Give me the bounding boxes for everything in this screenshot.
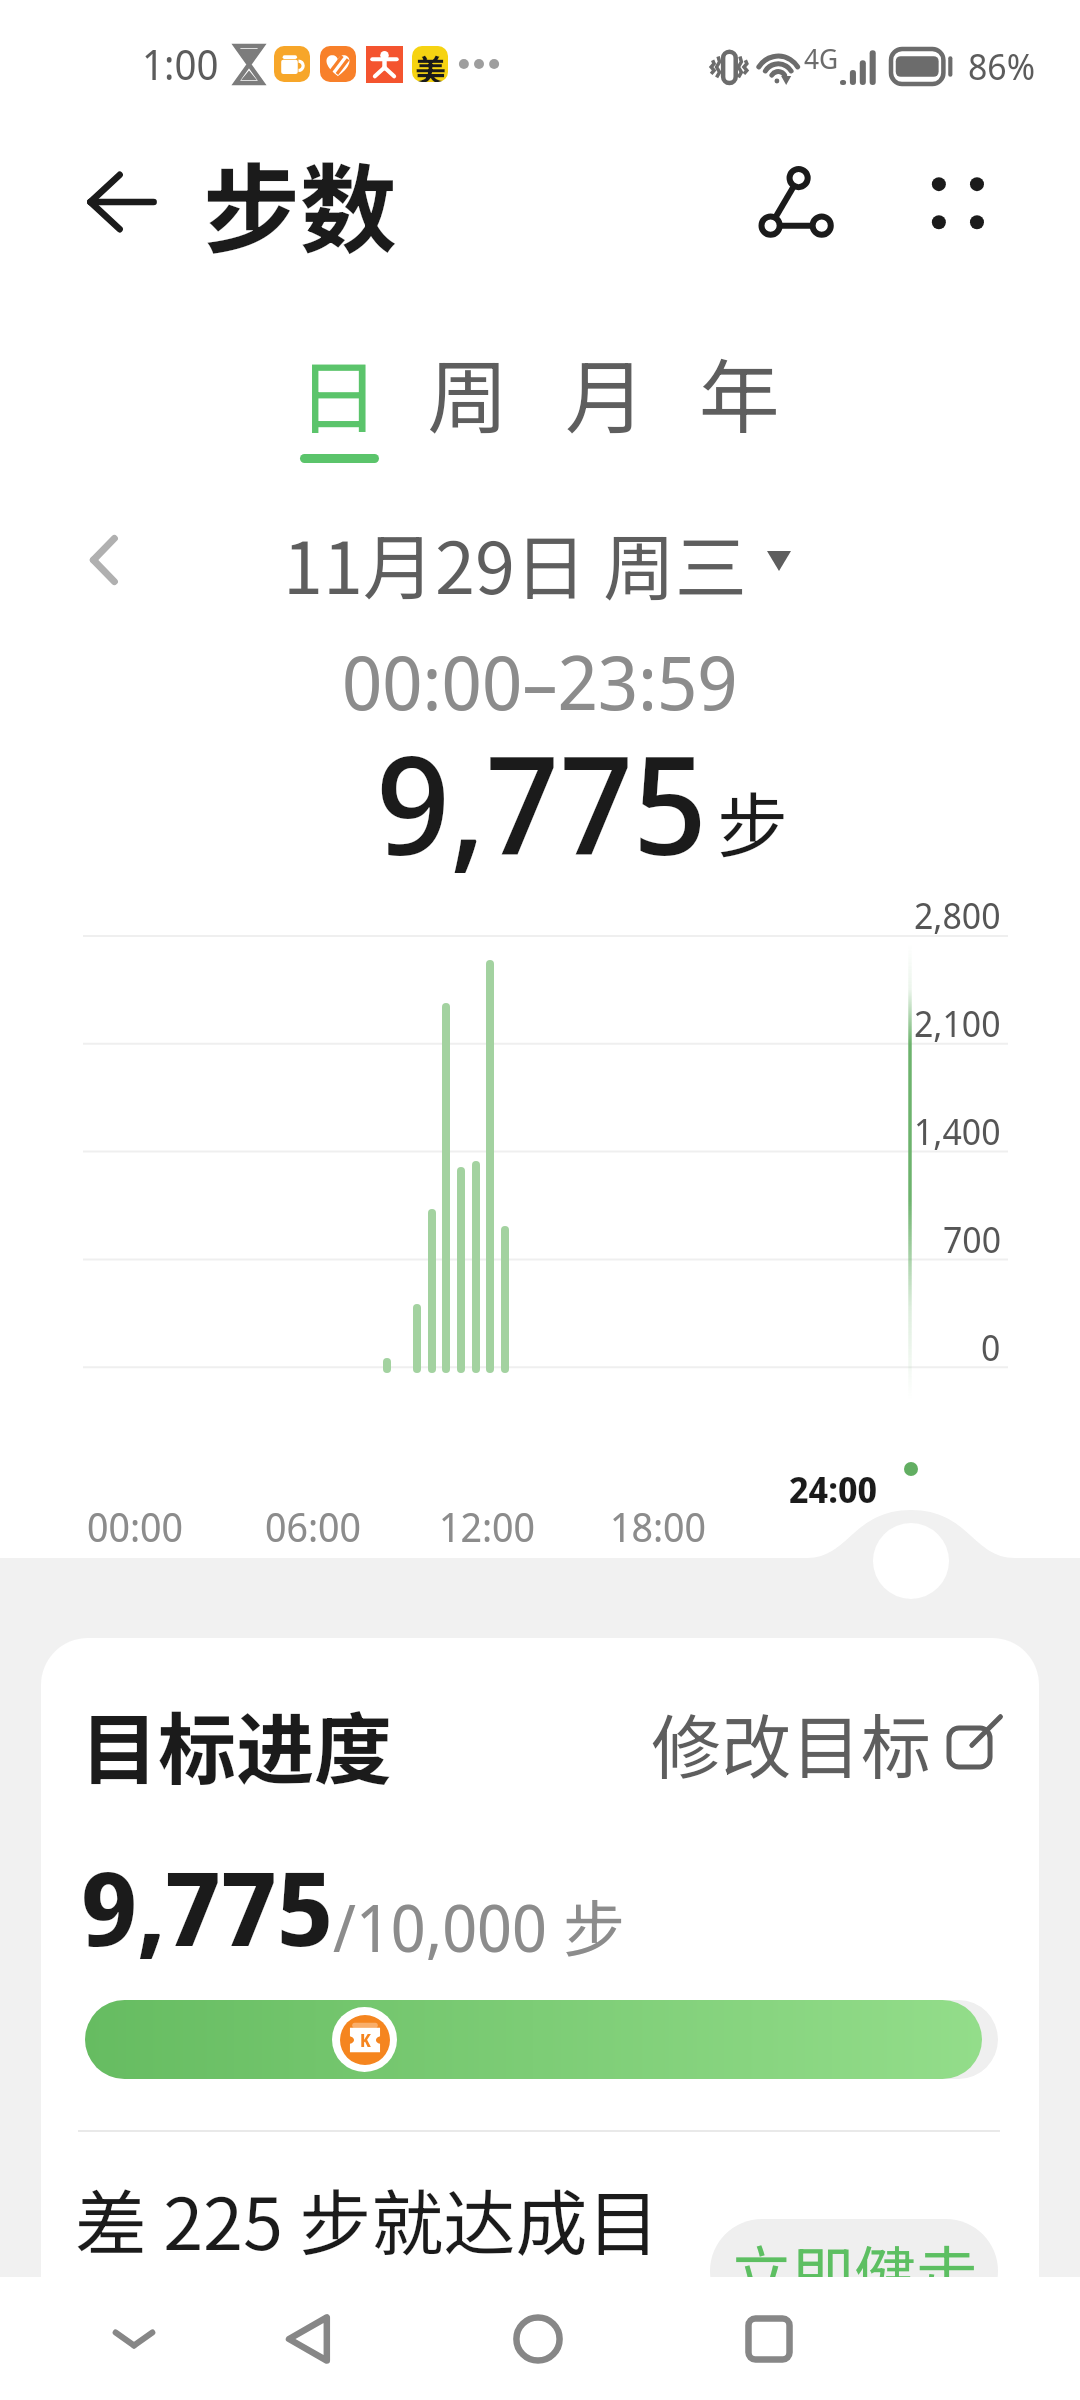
staticText: K xyxy=(360,2029,371,2052)
button[interactable]: 日 xyxy=(272,327,406,469)
staticText: 日 xyxy=(298,333,380,450)
staticText: 周 xyxy=(427,333,509,450)
staticText: 目标进度 xyxy=(80,1688,393,1801)
staticText: 11月29日 周三 xyxy=(283,510,747,614)
staticText: 4G xyxy=(804,39,839,77)
staticText: 步 xyxy=(563,1880,626,1970)
button[interactable]: Share xyxy=(752,157,840,245)
staticText: 差 225 步就达成目 xyxy=(75,2166,660,2270)
staticText: 年 xyxy=(699,333,781,450)
staticText: 步 xyxy=(717,770,789,873)
staticText: 美 xyxy=(415,46,446,82)
button[interactable]: 11月29日 周三 xyxy=(283,510,791,614)
staticText: 0 xyxy=(981,1323,1001,1372)
staticText: 立即健走 xyxy=(730,2226,979,2316)
button[interactable]: 年 xyxy=(673,327,807,469)
staticText: 2,800 xyxy=(914,891,1001,940)
staticText: 06:00 xyxy=(265,1499,362,1553)
staticText: 9,775 xyxy=(81,1836,333,1976)
button[interactable]: Previous day xyxy=(61,518,145,602)
staticText: 86% xyxy=(968,42,1035,91)
staticText: /10,000 xyxy=(333,1883,547,1972)
staticText: 24:00 xyxy=(789,1465,878,1514)
staticText: 00:00 xyxy=(87,1499,184,1553)
button[interactable]: Back xyxy=(261,2291,357,2387)
button[interactable]: More options xyxy=(909,155,1005,251)
staticText: 9,775 xyxy=(376,709,707,896)
button[interactable]: Back xyxy=(79,160,163,244)
staticText: 12:00 xyxy=(439,1499,536,1553)
button[interactable]: 月 xyxy=(539,327,673,469)
staticText: 月 xyxy=(565,333,647,450)
button[interactable]: Hide keyboard xyxy=(86,2291,182,2387)
staticText: 1,400 xyxy=(914,1107,1001,1156)
staticText: 00:00–23:59 xyxy=(342,630,738,732)
staticText: 2,100 xyxy=(914,999,1001,1048)
staticText: 700 xyxy=(943,1215,1001,1264)
staticText: 18:00 xyxy=(610,1499,707,1553)
staticText: 步数 xyxy=(203,132,397,272)
button[interactable]: 修改目标 xyxy=(651,1692,1001,1793)
staticText: 修改目标 xyxy=(651,1692,931,1793)
button[interactable]: 立即健走 xyxy=(710,2219,998,2323)
button[interactable]: Home xyxy=(490,2291,586,2387)
button[interactable]: 周 xyxy=(401,327,535,469)
staticText: 1:00 xyxy=(142,36,219,92)
button[interactable]: Recent apps xyxy=(721,2291,817,2387)
